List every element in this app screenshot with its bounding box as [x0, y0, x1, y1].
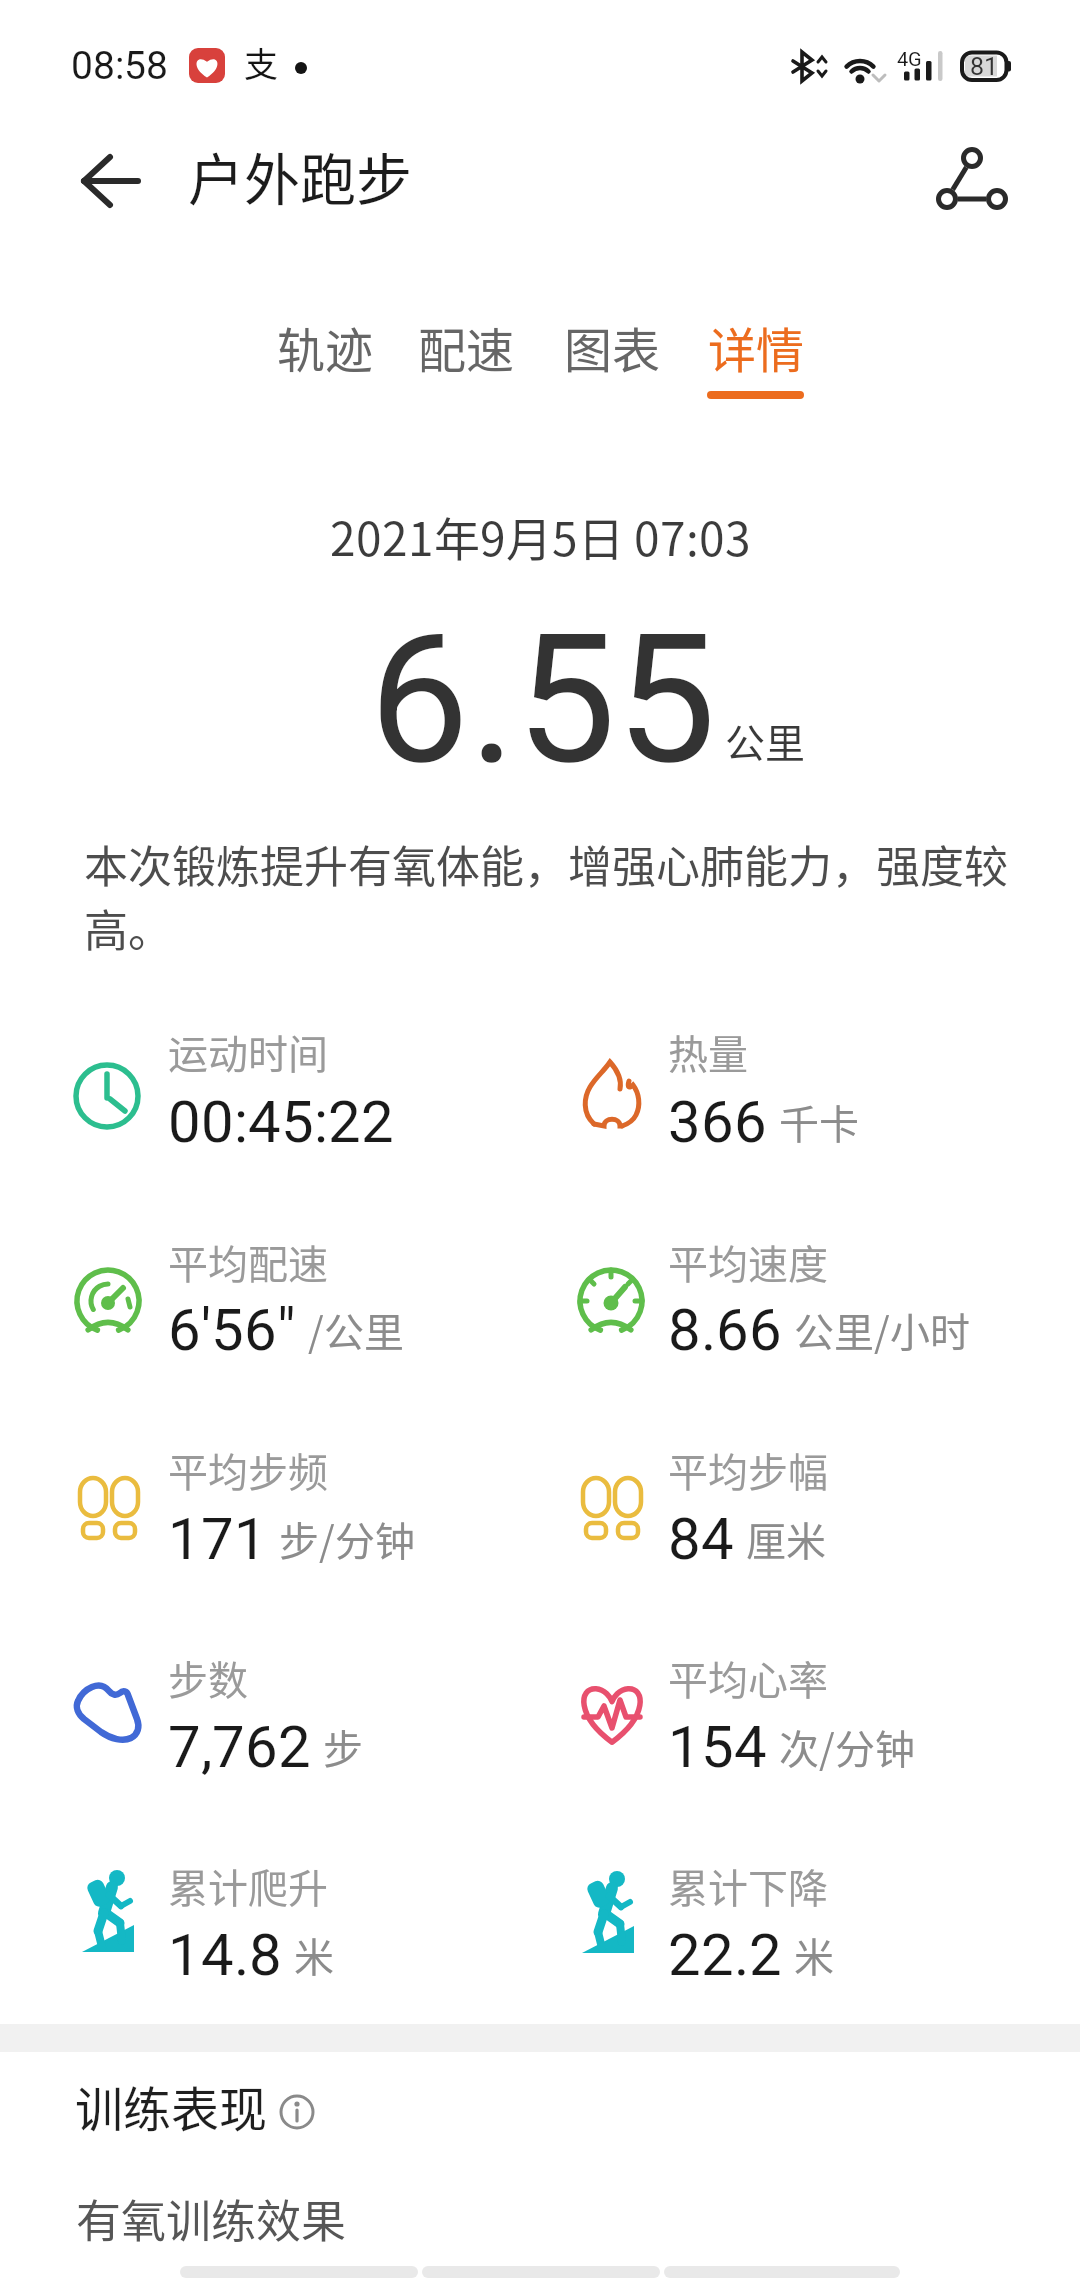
- button[interactable]: [255, 310, 395, 405]
- button[interactable]: [60, 135, 160, 225]
- button[interactable]: [688, 310, 828, 405]
- button[interactable]: [920, 135, 1020, 225]
- button[interactable]: [270, 2085, 325, 2140]
- button[interactable]: [398, 310, 538, 405]
- button[interactable]: [544, 310, 684, 405]
